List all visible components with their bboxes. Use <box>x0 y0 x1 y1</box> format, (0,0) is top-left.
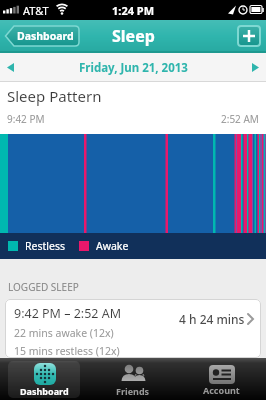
staticText: Friends <box>116 385 150 397</box>
staticText: 15 mins restless (12x) <box>14 344 120 358</box>
button[interactable]: Dashboard <box>5 25 80 47</box>
button[interactable] <box>237 25 261 47</box>
staticText: 1:24 PM <box>112 3 155 18</box>
button[interactable] <box>0 53 30 82</box>
staticText: 9:42 PM <box>7 112 45 126</box>
staticText: 22 mins awake (12x) <box>14 326 114 340</box>
staticText: Awake <box>96 239 129 253</box>
staticText: Account <box>203 384 240 396</box>
button[interactable] <box>236 53 266 82</box>
staticText: AT&T <box>23 3 49 18</box>
staticText: Friday, Jun 21, 2013 <box>79 60 188 76</box>
staticText: 9:42 PM – 2:52 AM <box>14 305 122 322</box>
staticText: Dashboard <box>17 29 74 43</box>
staticText: Dashboard <box>20 385 69 397</box>
staticText: Sleep Pattern <box>7 86 102 106</box>
button[interactable]: Account <box>177 358 266 400</box>
staticText: 2:52 AM <box>221 112 259 126</box>
staticText: LOGGED SLEEP <box>8 280 79 294</box>
button[interactable]: 9:42 PM – 2:52 AM <box>5 299 261 358</box>
staticText: Restless <box>25 239 65 253</box>
staticText: Sleep <box>112 25 155 47</box>
button[interactable]: Friends <box>88 358 177 400</box>
staticText: 4 h 24 mins <box>179 311 245 327</box>
button[interactable]: Dashboard <box>0 358 88 400</box>
